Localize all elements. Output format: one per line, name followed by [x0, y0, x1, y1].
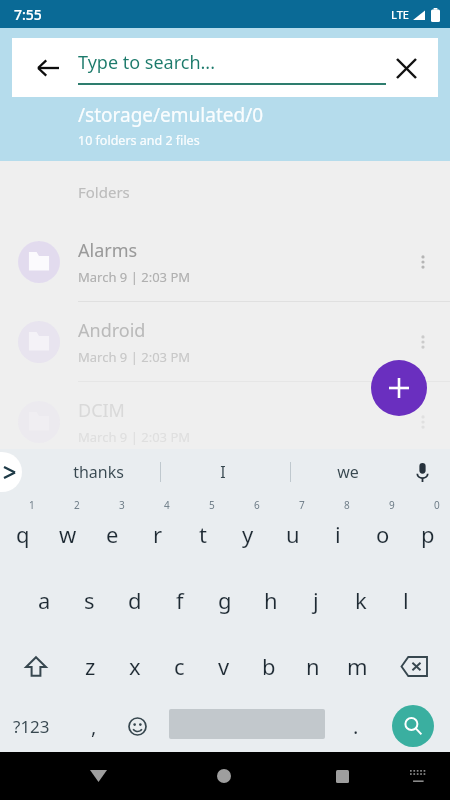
staticText: 1: [29, 498, 35, 512]
button[interactable]: Alarms: [0, 222, 450, 302]
button[interactable]: e: [90, 507, 135, 561]
button[interactable]: c: [157, 639, 202, 693]
button[interactable]: Delete: [386, 639, 442, 693]
button[interactable]: a: [22, 573, 67, 627]
button[interactable]: t: [180, 507, 225, 561]
button[interactable]: d: [112, 573, 157, 627]
button[interactable]: j: [293, 573, 338, 627]
button[interactable]: .: [334, 701, 378, 751]
staticText: z: [85, 651, 96, 681]
button[interactable]: DCIM: [0, 382, 450, 462]
button[interactable]: Back: [26, 46, 70, 90]
button[interactable]: Create new: [371, 360, 427, 416]
button[interactable]: n: [290, 639, 335, 693]
button[interactable]: m: [335, 639, 380, 693]
button[interactable]: Clear search: [384, 46, 428, 90]
staticText: a: [38, 585, 51, 615]
button[interactable]: r: [135, 507, 180, 561]
staticText: 3: [119, 498, 125, 512]
staticText: 5: [209, 498, 215, 512]
button[interactable]: l: [383, 573, 428, 627]
staticText: LTE: [391, 7, 409, 22]
button[interactable]: Recent apps: [320, 754, 364, 798]
staticText: h: [264, 585, 278, 615]
staticText: DCIM: [78, 398, 125, 423]
button[interactable]: ?123: [0, 701, 62, 751]
staticText: e: [106, 519, 119, 549]
staticText: 7:55: [14, 5, 42, 24]
staticText: 0: [434, 498, 440, 512]
staticText: Alarms: [78, 238, 138, 263]
staticText: f: [176, 585, 184, 615]
button[interactable]: Hide keyboard: [76, 754, 120, 798]
staticText: 8: [344, 498, 350, 512]
staticText: 4: [164, 498, 170, 512]
button[interactable]: k: [338, 573, 383, 627]
button[interactable]: y: [225, 507, 270, 561]
button[interactable]: q: [0, 507, 45, 561]
staticText: b: [262, 651, 276, 681]
button[interactable]: Voice input: [402, 452, 442, 492]
button[interactable]: i: [315, 507, 360, 561]
staticText: w: [59, 519, 77, 549]
button[interactable]: Shift: [8, 639, 64, 693]
staticText: r: [153, 519, 163, 549]
staticText: v: [218, 651, 230, 681]
button[interactable]: o: [360, 507, 405, 561]
staticText: g: [218, 585, 232, 615]
staticText: c: [174, 651, 185, 681]
staticText: m: [347, 651, 368, 681]
button[interactable]: g: [202, 573, 247, 627]
button[interactable]: Emoji: [113, 701, 161, 751]
button[interactable]: I: [178, 449, 268, 495]
staticText: j: [313, 585, 319, 615]
button[interactable]: ,: [70, 701, 118, 751]
button[interactable]: v: [201, 639, 246, 693]
button[interactable]: Android: [0, 302, 450, 382]
staticText: Folders: [78, 182, 130, 202]
staticText: i: [335, 519, 341, 549]
staticText: we: [337, 461, 359, 483]
button[interactable]: Home: [202, 754, 246, 798]
staticText: l: [403, 585, 409, 615]
staticText: 6: [254, 498, 260, 512]
staticText: Android: [78, 318, 146, 343]
staticText: q: [16, 519, 30, 549]
button[interactable]: x: [112, 639, 157, 693]
staticText: .: [353, 713, 359, 740]
staticText: x: [129, 651, 141, 681]
staticText: ,: [91, 713, 97, 740]
button[interactable]: we: [303, 449, 393, 495]
staticText: d: [128, 585, 142, 615]
button[interactable]: p: [405, 507, 450, 561]
button[interactable]: w: [45, 507, 90, 561]
button[interactable]: s: [67, 573, 112, 627]
staticText: March 9 | 2:03 PM: [78, 268, 191, 286]
staticText: March 9 | 2:03 PM: [78, 428, 191, 446]
staticText: u: [286, 519, 300, 549]
staticText: thanks: [73, 461, 124, 483]
staticText: t: [199, 519, 207, 549]
staticText: 2: [74, 498, 80, 512]
button[interactable]: thanks: [53, 449, 143, 495]
staticText: 10 folders and 2 files: [78, 132, 200, 149]
button[interactable]: f: [157, 573, 202, 627]
staticText: s: [84, 585, 95, 615]
button[interactable]: b: [246, 639, 291, 693]
staticText: n: [306, 651, 320, 681]
staticText: /storage/emulated/0: [78, 102, 264, 128]
button[interactable]: h: [248, 573, 293, 627]
button[interactable]: Switch keyboard: [398, 756, 438, 796]
button[interactable]: Search: [392, 705, 434, 747]
button[interactable]: More suggestions: [0, 452, 22, 492]
staticText: y: [242, 519, 254, 549]
button[interactable]: u: [270, 507, 315, 561]
staticText: k: [355, 585, 367, 615]
staticText: 7: [299, 498, 305, 512]
staticText: Type to search...: [78, 50, 215, 75]
staticText: I: [220, 461, 226, 483]
staticText: o: [376, 519, 390, 549]
button[interactable]: z: [68, 639, 113, 693]
staticText: 9: [389, 498, 395, 512]
